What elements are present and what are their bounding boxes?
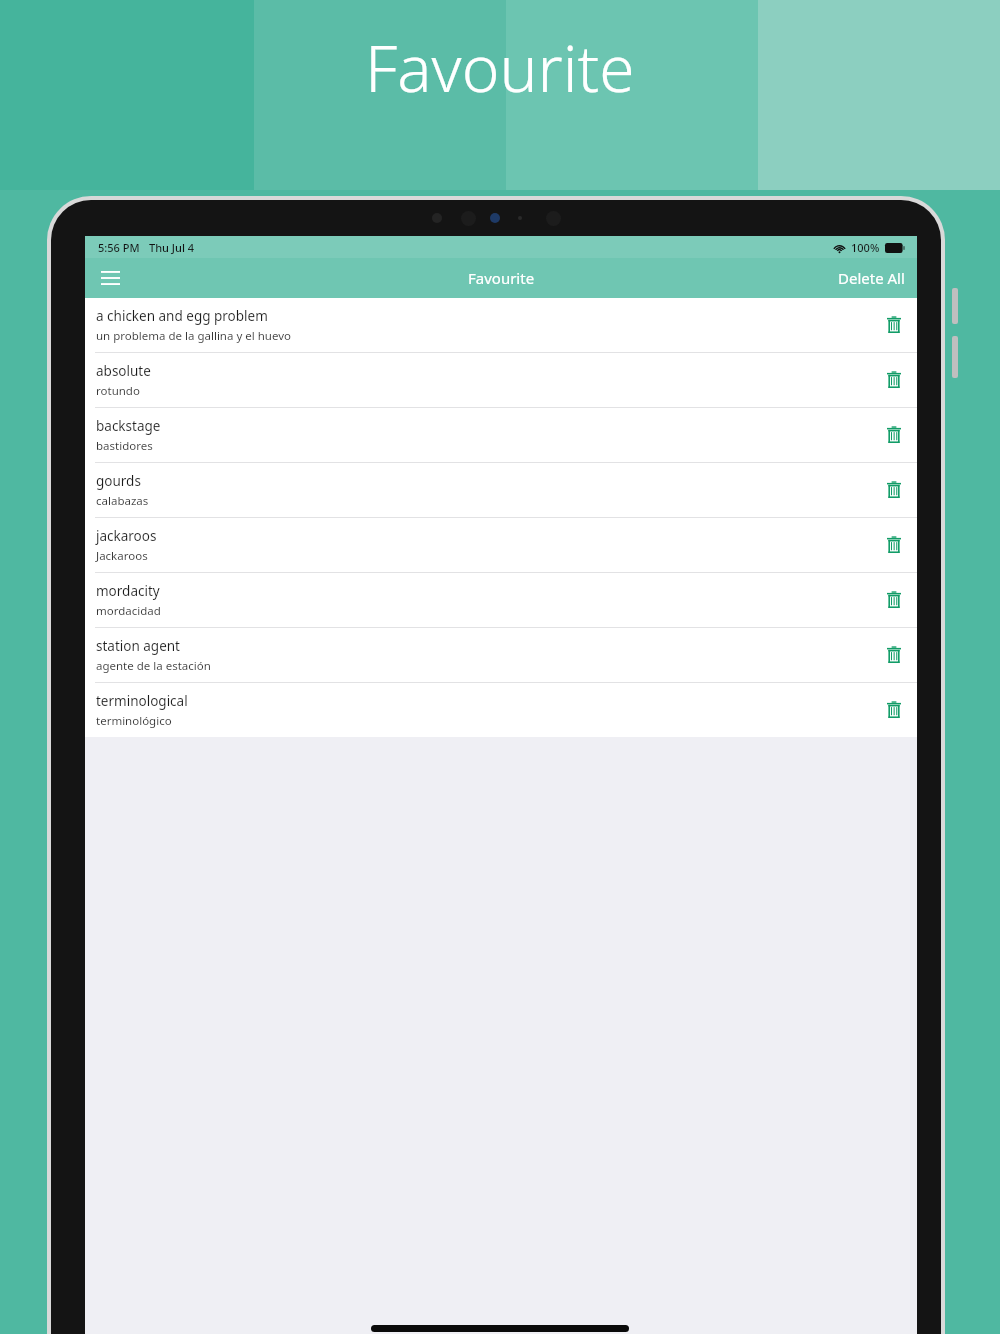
staticText: mordacity bbox=[96, 582, 160, 600]
button[interactable]: Delete bbox=[879, 585, 909, 615]
button[interactable]: jackaroos bbox=[85, 518, 917, 572]
staticText: rotundo bbox=[96, 383, 140, 399]
button[interactable]: Delete bbox=[879, 310, 909, 340]
button[interactable]: mordacity bbox=[85, 573, 917, 627]
staticText: Delete All bbox=[838, 268, 905, 288]
button[interactable]: Delete bbox=[879, 695, 909, 725]
staticText: gourds bbox=[96, 472, 141, 490]
staticText: calabazas bbox=[96, 493, 149, 509]
button[interactable]: gourds bbox=[85, 463, 917, 517]
staticText: un problema de la gallina y el huevo bbox=[96, 328, 291, 344]
staticText: a chicken and egg problem bbox=[96, 307, 268, 325]
button[interactable]: Menu bbox=[93, 261, 127, 295]
button[interactable]: Delete All bbox=[834, 262, 909, 294]
button[interactable]: Delete bbox=[879, 530, 909, 560]
button[interactable]: Delete bbox=[879, 365, 909, 395]
button[interactable]: terminological bbox=[85, 683, 917, 737]
staticText: bastidores bbox=[96, 438, 153, 454]
staticText: Jackaroos bbox=[96, 548, 148, 564]
button[interactable]: absolute bbox=[85, 353, 917, 407]
staticText: terminological bbox=[96, 692, 188, 710]
button[interactable]: station agent bbox=[85, 628, 917, 682]
staticText: absolute bbox=[96, 362, 151, 380]
button[interactable]: backstage bbox=[85, 408, 917, 462]
staticText: 100% bbox=[851, 240, 880, 255]
staticText: terminológico bbox=[96, 713, 172, 729]
staticText: mordacidad bbox=[96, 603, 161, 619]
button[interactable]: Delete bbox=[879, 475, 909, 505]
staticText: jackaroos bbox=[96, 527, 157, 545]
staticText: station agent bbox=[96, 637, 180, 655]
button[interactable]: Delete bbox=[879, 420, 909, 450]
staticText: 5:56 PM bbox=[98, 240, 140, 255]
staticText: agente de la estación bbox=[96, 658, 211, 674]
staticText: backstage bbox=[96, 417, 161, 435]
staticText: Favourite bbox=[468, 268, 535, 288]
staticText: Favourite bbox=[365, 24, 635, 111]
button[interactable]: a chicken and egg problem bbox=[85, 298, 917, 352]
staticText: Thu Jul 4 bbox=[149, 240, 195, 255]
button[interactable]: Delete bbox=[879, 640, 909, 670]
